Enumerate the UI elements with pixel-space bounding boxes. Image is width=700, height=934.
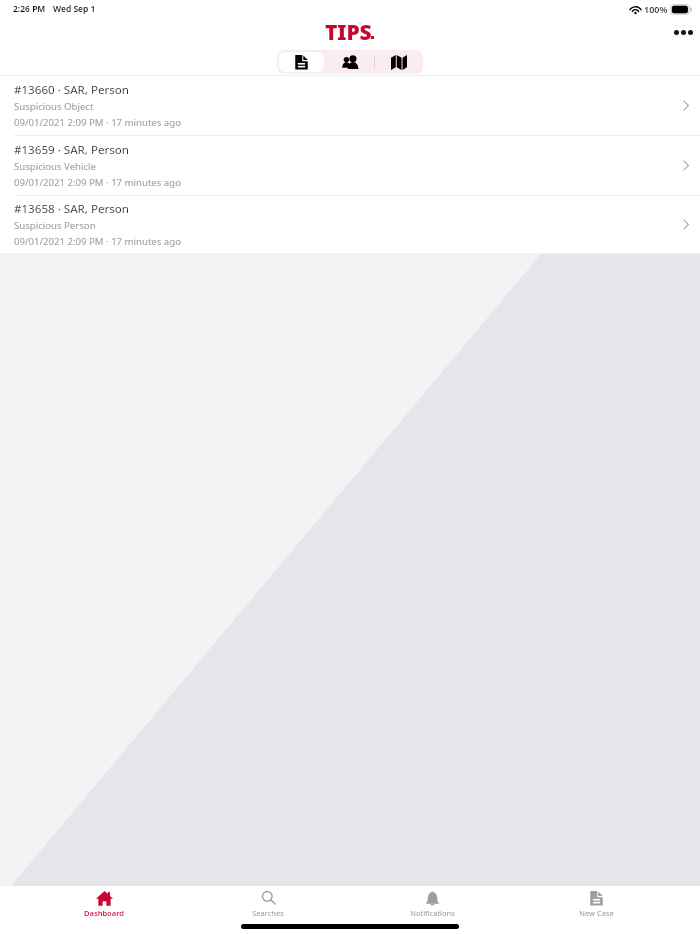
button[interactable]: Dashboard bbox=[22, 890, 186, 922]
button[interactable]: New Case bbox=[514, 890, 678, 922]
staticText: Suspicious Object bbox=[14, 100, 94, 113]
staticText: #13660 · SAR, Person bbox=[14, 82, 129, 98]
staticText: Dashboard bbox=[84, 908, 124, 918]
staticText: TIPS bbox=[325, 18, 372, 47]
button[interactable]: #13659 · SAR, Person bbox=[0, 136, 700, 195]
staticText: Searches bbox=[252, 908, 284, 918]
staticText: 100% bbox=[644, 3, 668, 15]
staticText: New Case bbox=[579, 908, 614, 918]
button[interactable]: Searches bbox=[186, 890, 350, 922]
button[interactable]: Notifications bbox=[350, 890, 514, 922]
staticText: 2:26 PM bbox=[13, 3, 46, 15]
staticText: #13658 · SAR, Person bbox=[14, 201, 129, 217]
staticText: #13659 · SAR, Person bbox=[14, 142, 129, 158]
button[interactable]: Map bbox=[375, 50, 423, 74]
staticText: Suspicious Vehicle bbox=[14, 160, 96, 173]
staticText: Suspicious Person bbox=[14, 219, 96, 232]
staticText: Notifications bbox=[410, 908, 455, 918]
staticText: 09/01/2021 2:09 PM · 17 minutes ago bbox=[14, 176, 181, 189]
button[interactable]: #13660 · SAR, Person bbox=[0, 76, 700, 135]
button[interactable]: More options bbox=[669, 18, 697, 46]
staticText: Wed Sep 1 bbox=[53, 3, 96, 15]
staticText: 09/01/2021 2:09 PM · 17 minutes ago bbox=[14, 116, 181, 129]
staticText: 09/01/2021 2:09 PM · 17 minutes ago bbox=[14, 235, 181, 248]
button[interactable]: #13658 · SAR, Person bbox=[0, 196, 700, 253]
button[interactable]: People bbox=[326, 50, 374, 74]
button[interactable]: Cases bbox=[279, 52, 324, 72]
